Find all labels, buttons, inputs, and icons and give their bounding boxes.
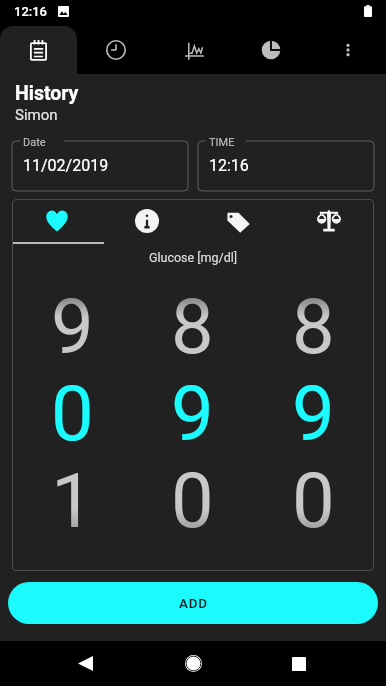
button[interactable]: Home bbox=[171, 641, 215, 686]
button[interactable]: Clock bbox=[77, 26, 155, 74]
staticText: 0 bbox=[292, 456, 335, 543]
button[interactable]: 8 bbox=[132, 282, 253, 369]
staticText: 9 bbox=[51, 282, 94, 369]
button[interactable]: 0 bbox=[132, 456, 253, 543]
button[interactable]: Recent apps bbox=[277, 641, 321, 686]
button[interactable]: 0 bbox=[253, 456, 374, 543]
staticText: 8 bbox=[292, 282, 335, 369]
staticText: 0 bbox=[171, 456, 214, 543]
staticText: 11/02/2019 bbox=[23, 156, 109, 175]
button[interactable]: History bbox=[0, 26, 77, 74]
staticText: Glucose [mg/dl] bbox=[149, 250, 238, 265]
button[interactable]: 9 bbox=[12, 282, 132, 369]
button[interactable]: Blood pressure bbox=[12, 199, 102, 242]
staticText: ADD bbox=[179, 595, 208, 611]
button[interactable]: 1 bbox=[12, 456, 132, 543]
staticText: 12:16 bbox=[14, 4, 48, 19]
button[interactable]: 8 bbox=[253, 282, 374, 369]
button[interactable]: ADD bbox=[8, 582, 378, 624]
staticText: Date bbox=[23, 136, 46, 149]
staticText: 9 bbox=[171, 369, 214, 456]
button[interactable]: Weight bbox=[283, 199, 374, 242]
button[interactable]: Back bbox=[63, 641, 107, 686]
staticText: 0 bbox=[51, 369, 94, 456]
staticText: 9 bbox=[292, 369, 335, 456]
staticText: 1 bbox=[51, 456, 94, 543]
button[interactable]: 9 bbox=[132, 369, 253, 456]
staticText: Simon bbox=[15, 106, 58, 124]
staticText: History bbox=[15, 82, 79, 105]
staticText: 8 bbox=[171, 282, 214, 369]
button[interactable]: 9 bbox=[253, 369, 374, 456]
button[interactable]: Tags bbox=[192, 199, 283, 242]
button[interactable]: 0 bbox=[12, 369, 132, 456]
button[interactable]: Chart bbox=[155, 26, 232, 74]
staticText: 12:16 bbox=[209, 156, 249, 175]
button[interactable]: More options bbox=[309, 26, 386, 74]
button[interactable]: Information bbox=[102, 199, 192, 242]
staticText: TIME bbox=[209, 136, 235, 149]
button[interactable]: Pie chart bbox=[232, 26, 309, 74]
